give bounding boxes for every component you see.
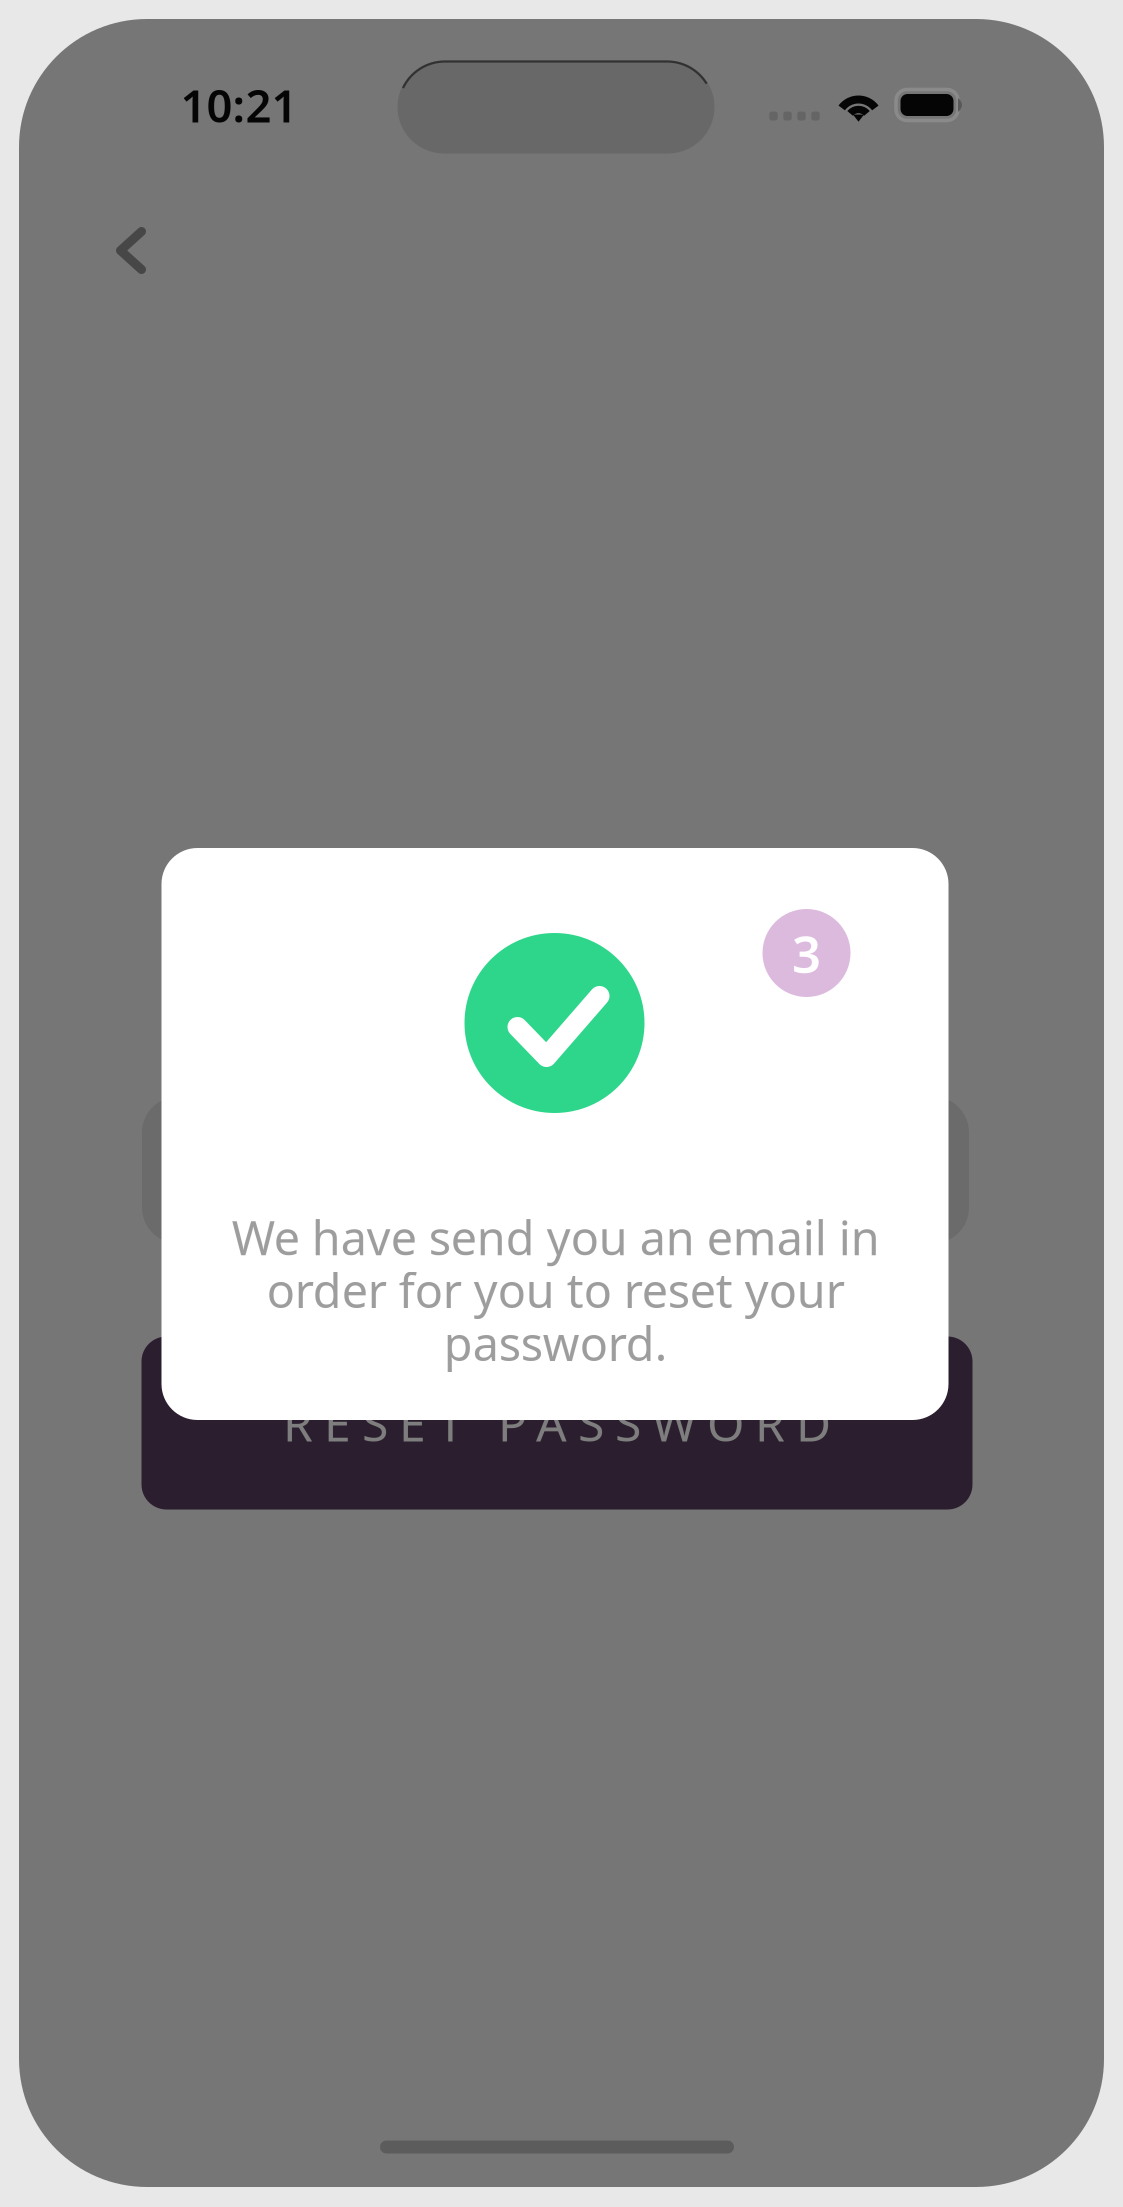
staticText: 3 (792, 919, 821, 987)
button[interactable]: Email address (142, 1096, 969, 1243)
staticText: 10:21 (180, 75, 297, 135)
staticText: RESET PASSWORD (283, 1391, 831, 1455)
button[interactable]: RESET PASSWORD (141, 1336, 972, 1509)
button[interactable]: 3 remaining (762, 909, 850, 997)
staticText: We have send you an email in order for y… (231, 1206, 879, 1374)
button[interactable]: Back (91, 210, 171, 290)
